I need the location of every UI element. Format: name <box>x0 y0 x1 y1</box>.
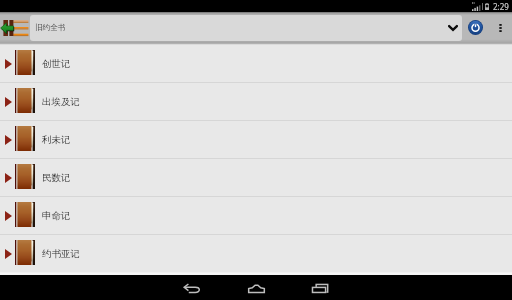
button[interactable]: Back <box>160 276 224 300</box>
button[interactable]: 创世记 <box>0 45 512 82</box>
button[interactable]: 民数记 <box>0 159 512 196</box>
button[interactable]: More options <box>488 12 512 43</box>
button[interactable]: 约书亚记 <box>0 235 512 272</box>
button[interactable]: Navigate up <box>0 12 30 43</box>
button[interactable]: 申命记 <box>0 197 512 234</box>
button[interactable]: 旧约全书 <box>30 15 462 41</box>
staticText: 利未记 <box>42 134 71 146</box>
staticText: 创世记 <box>42 58 71 70</box>
button[interactable]: 出埃及记 <box>0 83 512 120</box>
button[interactable]: Recent apps <box>288 276 352 300</box>
staticText: 约书亚记 <box>42 248 80 260</box>
staticText: 申命记 <box>42 210 71 222</box>
staticText: 民数记 <box>42 172 71 184</box>
staticText: 2:29 <box>493 1 509 12</box>
staticText: 出埃及记 <box>42 96 80 108</box>
button[interactable]: Home <box>224 276 288 300</box>
staticText: 旧约全书 <box>35 23 66 33</box>
button[interactable]: Power <box>462 12 488 43</box>
button[interactable]: 利未记 <box>0 121 512 158</box>
